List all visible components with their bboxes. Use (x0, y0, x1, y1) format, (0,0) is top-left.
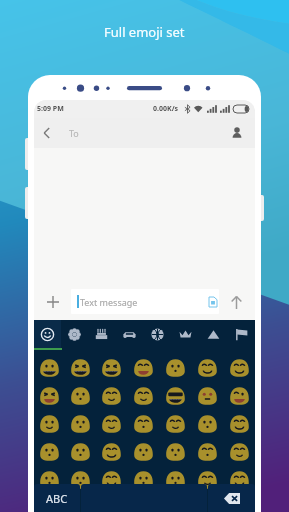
button[interactable]: Emoji (127, 466, 159, 494)
button[interactable]: Emoji (96, 466, 127, 494)
button[interactable]: Emoji (159, 354, 191, 382)
button[interactable]: Nature (61, 320, 88, 348)
button[interactable]: Emoji (65, 382, 96, 410)
button[interactable]: Emoji (34, 466, 65, 494)
button[interactable]: Emoji (191, 438, 223, 466)
button[interactable]: Emoji (96, 382, 127, 410)
button[interactable]: Emoji (223, 410, 255, 438)
button[interactable]: Flags (227, 320, 255, 348)
button[interactable]: Send (225, 291, 247, 313)
button[interactable]: Emoji (223, 354, 255, 382)
button[interactable]: Text message (71, 289, 219, 314)
button[interactable]: Emoji (127, 438, 159, 466)
staticText: To (69, 127, 79, 139)
button[interactable]: Objects (171, 320, 199, 348)
button[interactable]: Emoji (34, 354, 65, 382)
button[interactable]: Food (88, 320, 115, 348)
staticText: 5:09 PM (37, 104, 64, 114)
button[interactable]: Emoji (159, 410, 191, 438)
button[interactable]: Emoji (191, 382, 223, 410)
button[interactable]: Emoji (127, 382, 159, 410)
button[interactable]: Emoji (34, 438, 65, 466)
button[interactable]: Back (38, 123, 58, 143)
button[interactable]: Emoji (223, 438, 255, 466)
button[interactable]: Emoji (65, 410, 96, 438)
button[interactable]: Emoji (159, 382, 191, 410)
button[interactable]: Smileys (34, 320, 61, 348)
button[interactable]: Emoji (34, 382, 65, 410)
button[interactable]: Emoji (127, 410, 159, 438)
button[interactable]: Space (81, 484, 207, 512)
button[interactable]: Emoji (65, 466, 96, 494)
button[interactable]: Emoji (191, 466, 223, 494)
button[interactable]: Emoji (191, 354, 223, 382)
button[interactable]: Activities (143, 320, 171, 348)
staticText: 0.00K/s (153, 104, 179, 114)
button[interactable]: Emoji (159, 438, 191, 466)
button[interactable]: Emoji (34, 410, 65, 438)
staticText: Text message (80, 296, 138, 308)
button[interactable]: Contacts (227, 123, 247, 143)
button[interactable]: Emoji (65, 438, 96, 466)
button[interactable]: Emoji (223, 466, 255, 494)
button[interactable]: ABC (34, 484, 80, 512)
button[interactable]: Emoji (159, 466, 191, 494)
button[interactable]: Symbols (199, 320, 227, 348)
button[interactable]: Emoji (96, 438, 127, 466)
button[interactable]: SIM card (206, 295, 219, 308)
staticText: Full emoji set (104, 23, 185, 41)
staticText: ABC (46, 491, 68, 506)
button[interactable]: Emoji (96, 410, 127, 438)
button[interactable]: Emoji (65, 354, 96, 382)
button[interactable]: Emoji (127, 354, 159, 382)
button[interactable]: Emoji (191, 410, 223, 438)
button[interactable]: Add attachment (42, 291, 64, 313)
button[interactable]: Emoji (223, 382, 255, 410)
button[interactable]: Emoji (96, 354, 127, 382)
button[interactable]: Travel (115, 320, 143, 348)
button[interactable]: Backspace (208, 484, 255, 512)
